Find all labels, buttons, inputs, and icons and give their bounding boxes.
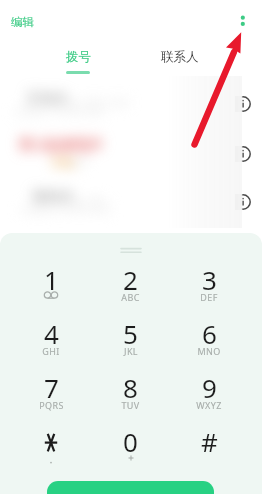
staticText: 李小姐来电中 (19, 135, 103, 153)
button[interactable]: 联系人 (155, 47, 205, 67)
staticText: 昨天 (72, 157, 88, 167)
button[interactable]: Contact details (235, 146, 251, 162)
staticText: 拨号 (66, 49, 91, 65)
staticText: WXYZ (196, 399, 222, 411)
button[interactable]: # (183, 424, 235, 472)
button[interactable]: 8 (104, 370, 156, 418)
button[interactable]: 3 (183, 262, 235, 310)
staticText: ABC (121, 291, 140, 303)
staticText: 2 (123, 262, 138, 297)
button[interactable] (25, 424, 77, 472)
staticText: 中国联通 158 0000 0000 (20, 204, 111, 215)
button[interactable]: More options (231, 8, 255, 32)
staticText: 手机 (51, 155, 75, 170)
button[interactable]: Call (47, 481, 214, 494)
staticText: 编辑 (11, 15, 34, 29)
staticText: 中国移动 139 0000 0000 (14, 106, 105, 117)
button[interactable] (0, 80, 262, 129)
staticText: 8 (123, 370, 138, 405)
button[interactable]: 5 (104, 316, 156, 364)
button[interactable] (0, 178, 262, 227)
staticText: MNO (197, 345, 221, 357)
staticText: 0 (123, 424, 138, 459)
button[interactable]: 1 (25, 262, 77, 310)
button[interactable]: 4 (25, 316, 77, 364)
button[interactable]: 7 (25, 370, 77, 418)
staticText: 联系人 (161, 49, 199, 65)
staticText: 6 (202, 316, 217, 351)
button[interactable]: 9 (183, 370, 235, 418)
staticText: 4 (44, 316, 59, 351)
button[interactable]: 编辑 (7, 12, 38, 32)
staticText: 1 (44, 262, 59, 297)
staticText: 李小姐来电中 (19, 138, 103, 156)
button[interactable] (0, 130, 262, 179)
button[interactable]: Contact details (235, 194, 251, 210)
staticText: GHI (42, 345, 60, 357)
staticText: 9 (202, 370, 217, 405)
button[interactable]: 0 (104, 424, 156, 472)
button[interactable]: 拨号 (60, 47, 97, 76)
button[interactable]: 2 (104, 262, 156, 310)
staticText: JKL (124, 345, 138, 357)
staticText: 5 (123, 316, 138, 351)
staticText: TUV (121, 399, 140, 411)
staticText: 7 (44, 370, 59, 405)
button[interactable]: 6 (183, 316, 235, 364)
staticText: 王先生 (26, 90, 68, 108)
staticText: 张先生 (32, 188, 74, 206)
staticText: DEF (200, 291, 218, 303)
staticText: # (201, 424, 218, 459)
staticText: PQRS (39, 399, 64, 411)
staticText: 手机 昨天 16:20 (60, 96, 129, 108)
staticText: 3 (202, 262, 217, 297)
button[interactable]: Contact details (235, 96, 251, 112)
staticText: 手机 周一 (66, 194, 110, 206)
